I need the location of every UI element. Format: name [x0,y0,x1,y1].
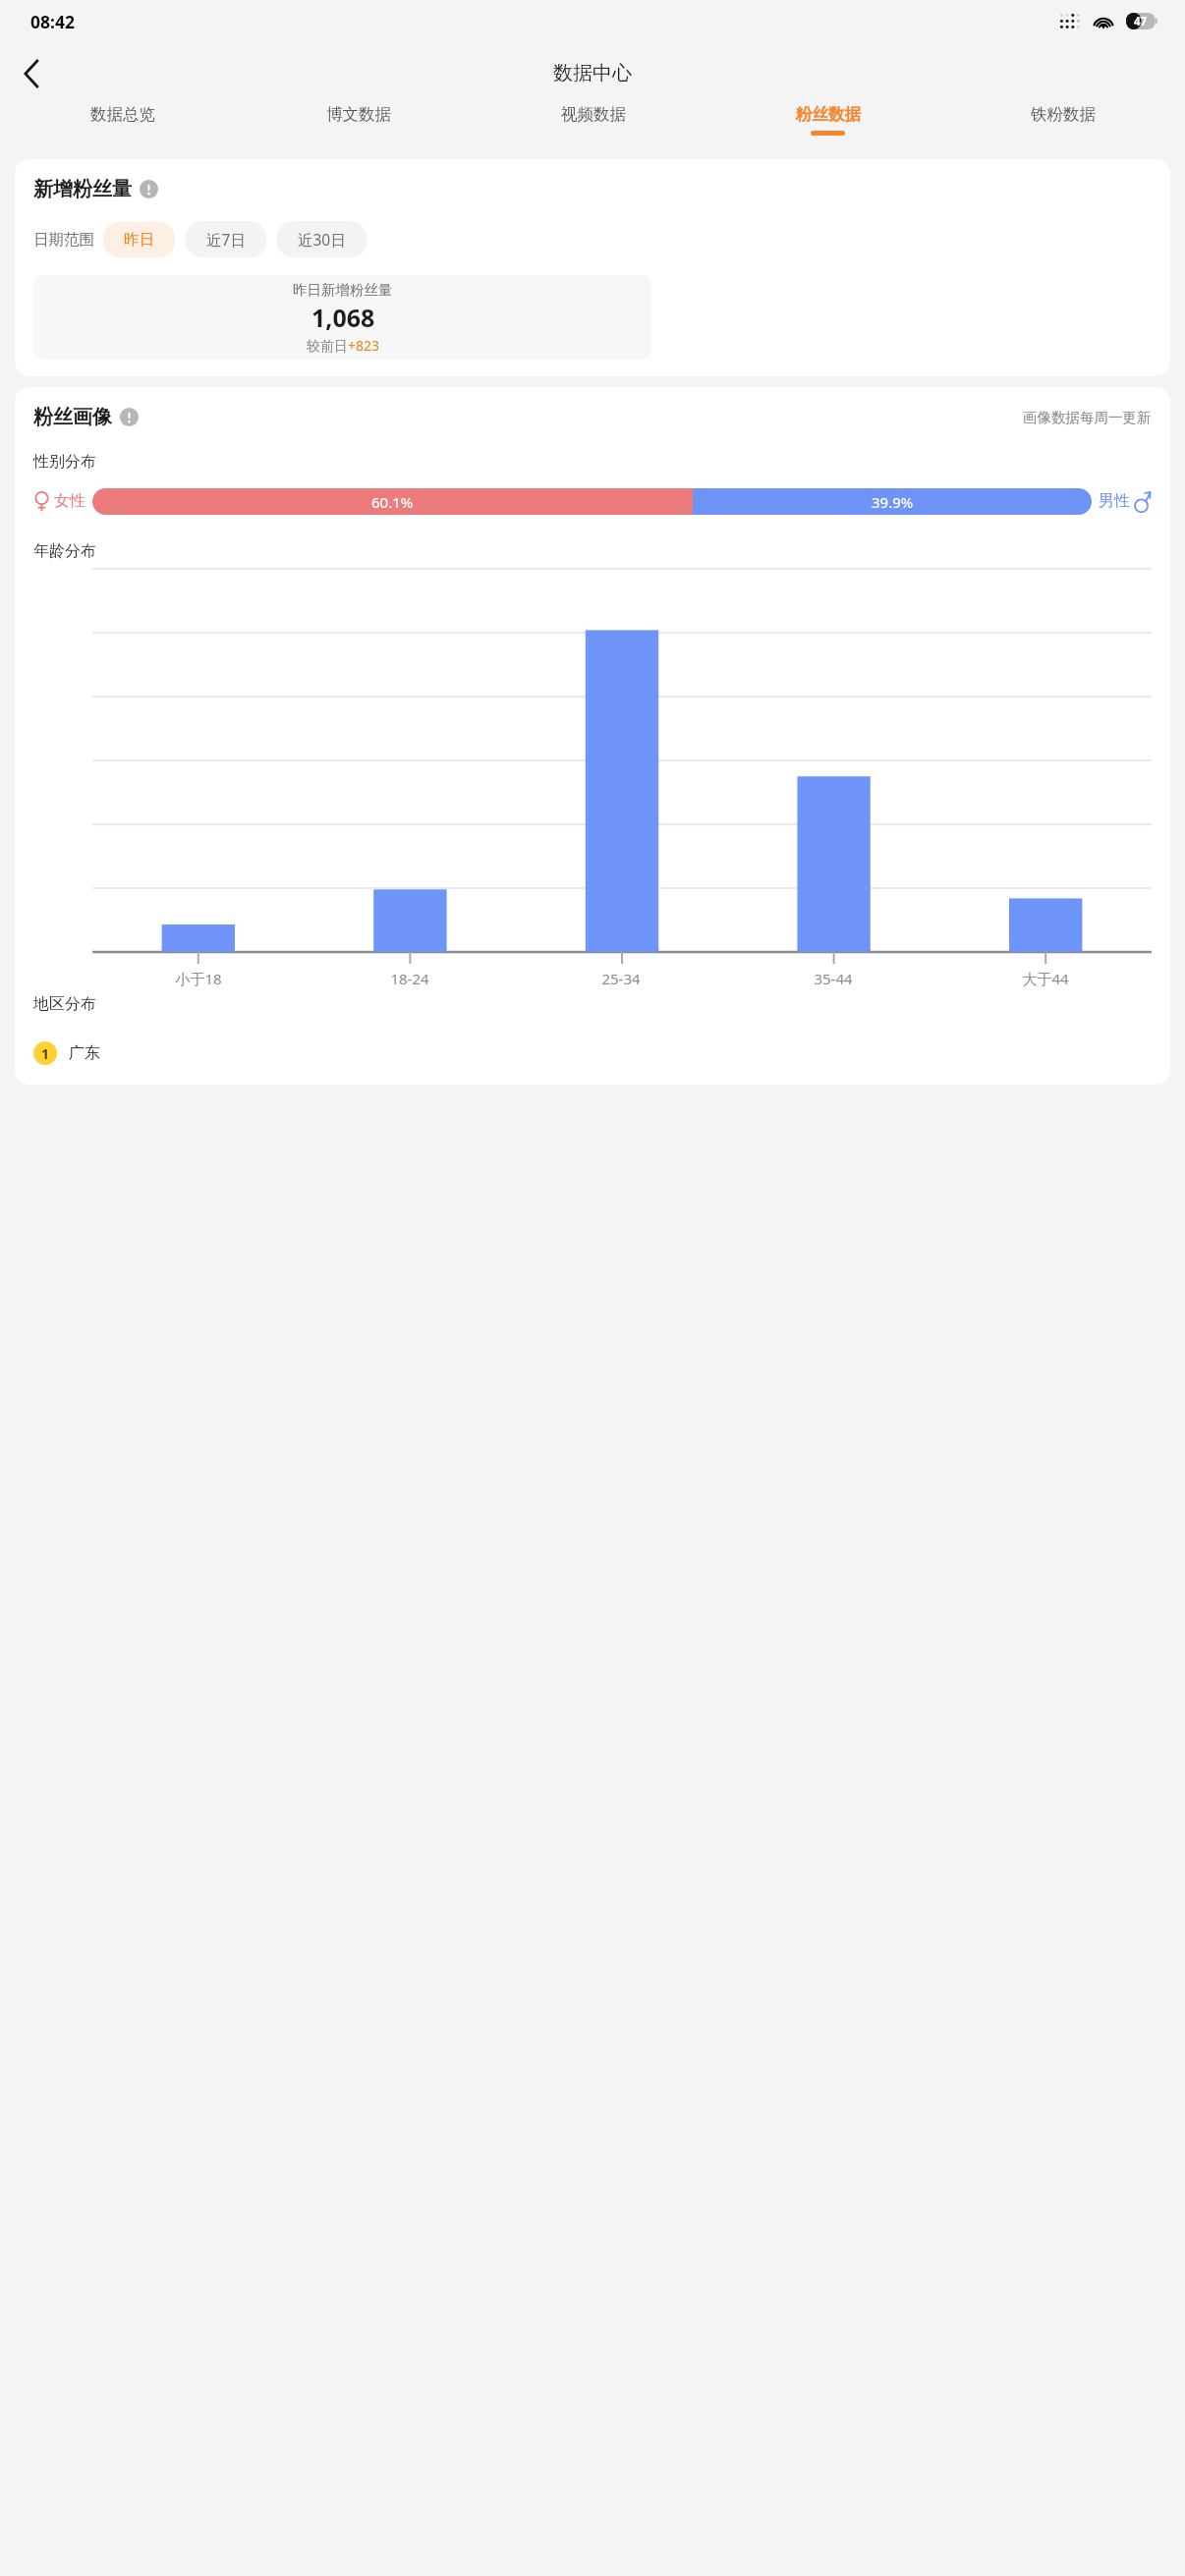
staticText: 昨日新增粉丝量 [293,281,393,299]
button[interactable]: 说明 [120,408,139,426]
staticText: 较前日+823 [307,336,380,355]
staticText: 日期范围 [33,230,94,250]
staticText: 粉丝数据 [796,104,861,125]
button[interactable]: Back [8,50,55,97]
button[interactable]: 说明 [140,180,158,198]
staticText: 25-34 [601,969,641,988]
staticText: 地区分布 [33,994,96,1014]
staticText: 新增粉丝量 [33,177,132,201]
staticText: 1,068 [311,301,375,334]
staticText: 年龄分布 [33,541,96,561]
button[interactable]: 近7日 [186,221,266,257]
staticText: 47 [1134,14,1148,29]
staticText: 视频数据 [561,104,626,125]
staticText: 39.9% [872,492,914,512]
button[interactable]: 昨日 [103,222,175,257]
staticText: 昨日 [124,230,154,250]
button[interactable]: 博文数据 [241,104,476,148]
staticText: 18-24 [390,969,429,988]
staticText: 大于44 [1022,969,1069,988]
staticText: 博文数据 [326,104,391,125]
staticText: 近7日 [206,229,246,250]
staticText: 广东 [69,1043,100,1063]
button[interactable]: 视频数据 [476,104,710,148]
staticText: 画像数据每周一更新 [1023,409,1152,426]
staticText: 粉丝画像 [33,405,112,429]
staticText: 数据总览 [90,104,155,125]
staticText: 60.1% [371,492,414,512]
staticText: 1 [41,1044,50,1063]
staticText: 35-44 [814,969,853,988]
button[interactable]: 近30日 [277,221,367,257]
staticText: 性别分布 [33,452,96,472]
button[interactable]: 粉丝数据 [710,104,945,148]
button[interactable]: 数据总览 [5,104,241,148]
staticText: 08:42 [30,10,75,33]
staticText: 近30日 [298,229,346,250]
staticText: 数据中心 [553,61,632,85]
staticText: 女性 [54,491,85,511]
button[interactable]: 铁粉数据 [945,104,1180,148]
staticText: 铁粉数据 [1031,104,1096,125]
staticText: 小于18 [175,969,222,988]
staticText: 男性 [1099,491,1130,511]
